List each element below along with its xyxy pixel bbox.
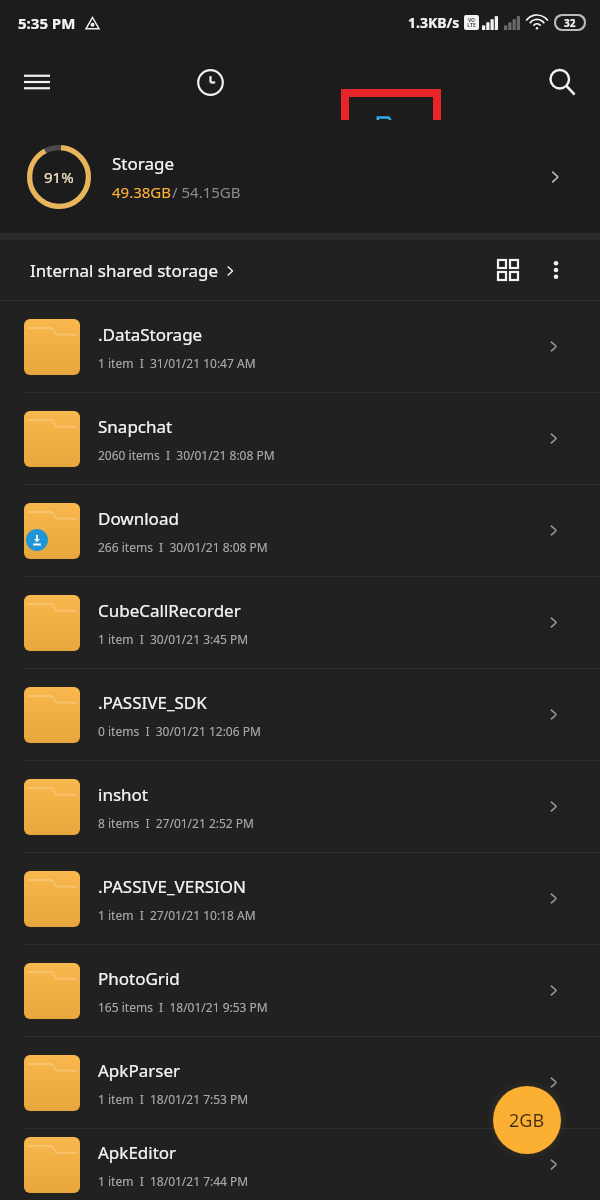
staticText: PhotoGrid — [98, 967, 180, 990]
staticText: 0 items I 30/01/21 12:06 PM — [98, 723, 261, 739]
button[interactable]: .PASSIVE_VERSION — [0, 853, 600, 944]
staticText: 1 item I 27/01/21 10:18 AM — [98, 907, 256, 923]
staticText: ApkParser — [98, 1059, 180, 1082]
staticText: CubeCallRecorder — [98, 599, 241, 622]
staticText: 1 item I 30/01/21 3:45 PM — [98, 631, 249, 647]
button[interactable]: .DataStorage — [0, 301, 600, 392]
button[interactable]: .PASSIVE_SDK — [0, 669, 600, 760]
button[interactable]: More options — [534, 248, 578, 292]
staticText: 1 item I 31/01/21 10:47 AM — [98, 355, 256, 371]
button[interactable]: ApkEditor — [0, 1129, 600, 1200]
staticText: .DataStorage — [98, 323, 203, 346]
button[interactable]: 91% — [0, 120, 600, 233]
button[interactable]: inshot — [0, 761, 600, 852]
staticText: / 54.15GB — [172, 182, 241, 202]
staticText: 165 items I 18/01/21 9:53 PM — [98, 999, 268, 1015]
staticText: Internal shared storage — [30, 259, 219, 282]
staticText: Download — [98, 507, 179, 530]
staticText: .PASSIVE_VERSION — [98, 875, 247, 898]
button[interactable]: CubeCallRecorder — [0, 577, 600, 668]
button[interactable]: Recent — [183, 55, 237, 109]
staticText: 2060 items I 30/01/21 8:08 PM — [98, 447, 275, 463]
staticText: .PASSIVE_SDK — [98, 691, 207, 714]
button[interactable]: PhotoGrid — [0, 945, 600, 1036]
button[interactable]: Files — [345, 93, 437, 160]
button[interactable]: Snapchat — [0, 393, 600, 484]
staticText: inshot — [98, 783, 148, 806]
staticText: 8 items I 27/01/21 2:52 PM — [98, 815, 255, 831]
button[interactable]: Download — [0, 485, 600, 576]
staticText: Snapchat — [98, 415, 173, 438]
staticText: 91% — [44, 167, 74, 187]
button[interactable]: ApkParser — [0, 1037, 600, 1128]
staticText: 1.3KB/s — [408, 13, 460, 32]
staticText: Storage — [112, 152, 175, 175]
button[interactable]: Grid view — [486, 248, 530, 292]
staticText: 266 items I 30/01/21 8:08 PM — [98, 539, 268, 555]
staticText: 1 item I 18/01/21 7:53 PM — [98, 1091, 249, 1107]
button[interactable]: Menu — [10, 55, 64, 109]
button[interactable]: 2GB free space — [493, 1086, 561, 1154]
staticText: 49.38GB — [112, 182, 172, 202]
staticText: 1 item I 18/01/21 7:44 PM — [98, 1173, 249, 1189]
button[interactable]: Internal shared storage — [30, 259, 236, 282]
staticText: 5:35 PM — [18, 13, 76, 33]
button[interactable]: Search — [535, 55, 589, 109]
staticText: VO LTE — [467, 17, 476, 28]
staticText: ApkEditor — [98, 1141, 177, 1164]
staticText: 2GB — [509, 1108, 545, 1133]
staticText: 32 — [564, 16, 576, 29]
